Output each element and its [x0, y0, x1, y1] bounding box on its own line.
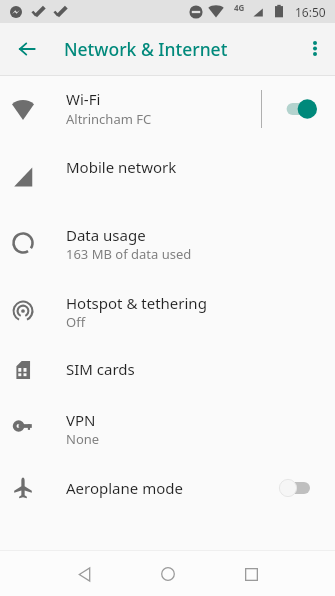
staticText: None [66, 430, 100, 448]
button[interactable]: Recent apps [223, 550, 279, 596]
staticText: Network & Internet [64, 37, 228, 61]
staticText: 163 MB of data used [66, 245, 192, 263]
button[interactable]: Home [140, 550, 196, 596]
staticText: Altrincham FC [66, 110, 152, 128]
staticText: SIM cards [66, 359, 135, 379]
staticText: Data usage [66, 225, 146, 245]
staticText: Wi-Fi [66, 89, 101, 109]
button[interactable] [0, 144, 335, 210]
button[interactable] [0, 337, 335, 403]
staticText: Mobile network [66, 157, 177, 177]
staticText: VPN [66, 410, 96, 430]
button[interactable]: Back [56, 550, 112, 596]
staticText: Off [66, 313, 86, 331]
staticText: 16:50 [295, 4, 326, 20]
button[interactable] [0, 393, 335, 459]
staticText: Aeroplane mode [66, 478, 183, 498]
button[interactable]: Wi-Fi on [281, 95, 323, 123]
button[interactable] [0, 210, 335, 276]
staticText: 4G [234, 2, 245, 13]
button[interactable] [0, 278, 335, 344]
button[interactable]: Aeroplane mode off [273, 474, 315, 502]
button[interactable] [0, 455, 335, 521]
button[interactable]: Back [10, 32, 44, 66]
button[interactable]: More options [298, 32, 331, 65]
staticText: Hotspot & tethering [66, 293, 207, 313]
button[interactable] [0, 76, 335, 142]
